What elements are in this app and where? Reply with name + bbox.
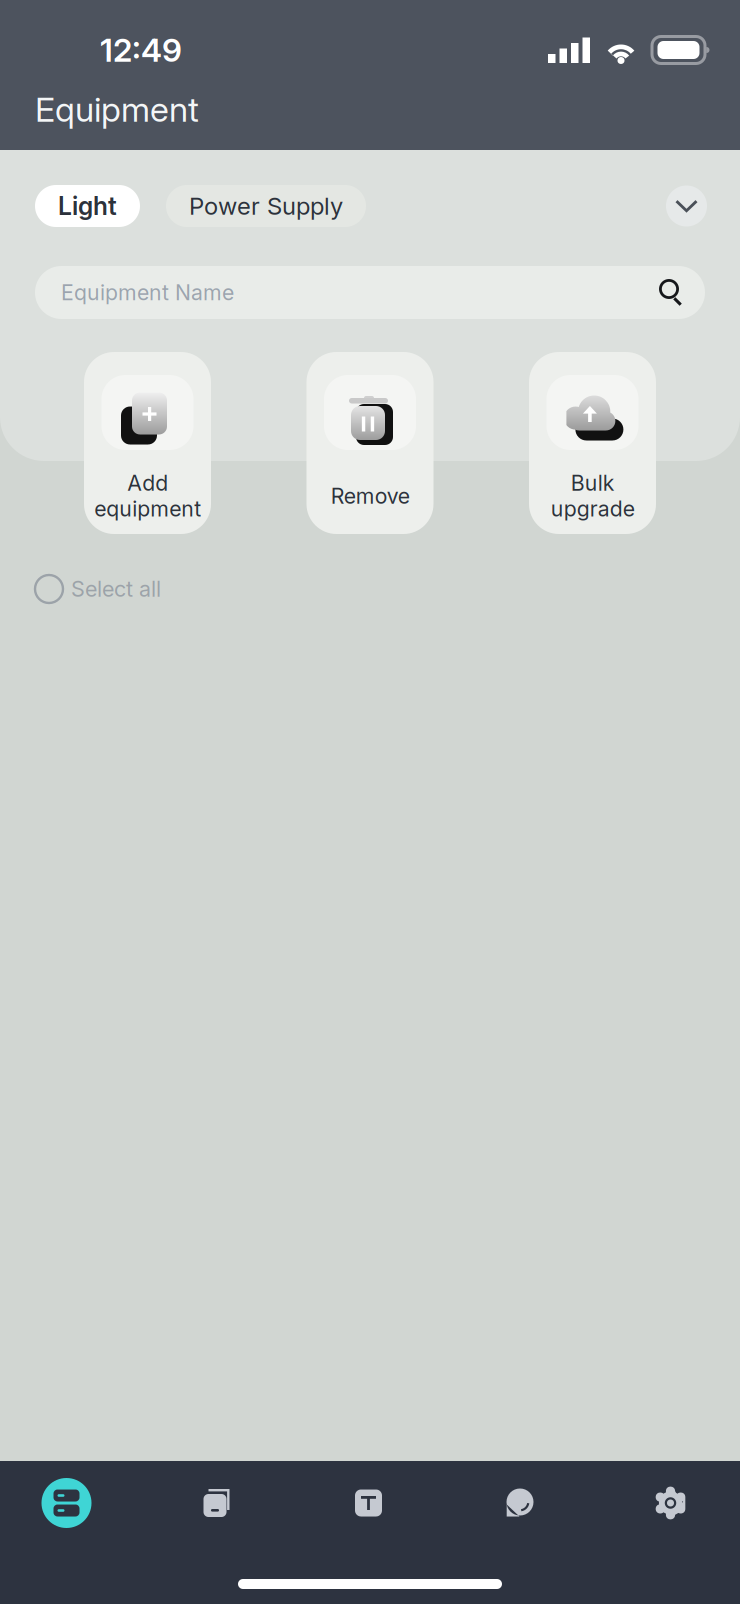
button[interactable]: Add equipment [84, 352, 211, 534]
button[interactable]: Expand filters [666, 185, 707, 226]
button[interactable]: Power Supply [166, 185, 366, 227]
button[interactable]: Select all [0, 563, 740, 615]
staticText: Equipment Name [61, 280, 234, 305]
button[interactable]: Equipment [0, 1461, 142, 1545]
button[interactable]: Settings [595, 1461, 740, 1545]
button[interactable]: Bulk upgrade [529, 352, 656, 534]
button[interactable]: Text [293, 1461, 444, 1545]
staticText: Bulk upgrade [550, 470, 634, 522]
button[interactable]: Light [35, 185, 140, 227]
button[interactable]: Remove [306, 352, 433, 534]
staticText: Add equipment [94, 470, 201, 522]
button[interactable]: Scenes [142, 1461, 293, 1545]
staticText: Power Supply [189, 191, 343, 220]
staticText: Select all [71, 576, 161, 602]
staticText: Light [58, 191, 117, 221]
staticText: Equipment [35, 89, 199, 130]
staticText: 12:49 [100, 31, 182, 69]
staticText: Remove [330, 483, 409, 509]
button[interactable]: Messages [444, 1461, 595, 1545]
